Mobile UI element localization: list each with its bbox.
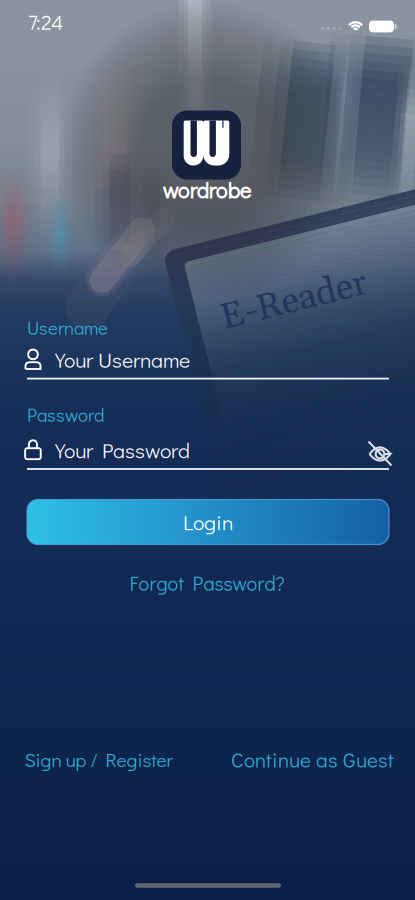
staticText: Username	[27, 315, 108, 340]
staticText: Your Password	[55, 436, 190, 464]
staticText: wordrobe	[162, 176, 251, 204]
button[interactable]: Forgot Password?	[129, 570, 284, 596]
staticText: Continue as Guest	[231, 746, 394, 773]
staticText: Forgot Password?	[129, 570, 284, 596]
staticText: Password	[27, 402, 104, 427]
staticText: E-Reader	[243, 269, 393, 315]
staticText: Login	[183, 508, 233, 536]
staticText: Sign up / Register	[24, 747, 173, 772]
button[interactable]: Continue as Guest	[231, 746, 394, 773]
staticText: 7:24	[28, 7, 63, 35]
button[interactable]: Sign up / Register	[24, 747, 173, 772]
staticText: Your Username	[55, 345, 190, 373]
button[interactable]: Show password	[367, 438, 393, 469]
button[interactable]: Login	[27, 499, 389, 544]
